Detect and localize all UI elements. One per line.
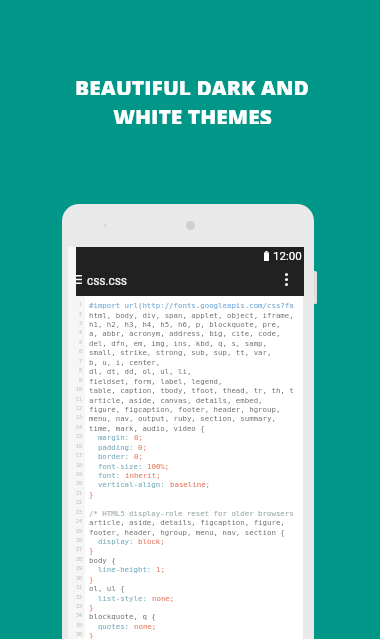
staticText: 12:00: [273, 249, 302, 262]
staticText: 34: [76, 612, 83, 618]
staticText: 26: [76, 537, 83, 543]
staticText: WHITE THEMES: [113, 103, 272, 124]
staticText: 21: [76, 490, 83, 496]
staticText: 20: [76, 480, 83, 486]
staticText: 25: [76, 528, 83, 534]
staticText: #import url(http://fonts.googleapis.com/…: [89, 301, 294, 310]
staticText: 9: [79, 377, 83, 383]
staticText: 1: [79, 301, 83, 307]
staticText: 19: [76, 471, 83, 477]
staticText: }: [89, 546, 94, 555]
staticText: fieldset, form, label, legend,: [89, 377, 223, 386]
staticText: border:: [89, 452, 134, 461]
staticText: CSS.CSS: [87, 276, 128, 287]
staticText: 0;: [134, 433, 143, 442]
staticText: 22: [76, 499, 83, 505]
staticText: dl, dt, dd, ol, ul, li,: [89, 367, 192, 376]
staticText: baseline;: [170, 480, 211, 489]
staticText: font-size:: [89, 462, 147, 471]
staticText: }: [89, 575, 94, 584]
staticText: 7: [79, 358, 83, 364]
staticText: article, aside, details, figcaption, fig…: [89, 518, 285, 527]
staticText: 0;: [138, 443, 147, 452]
staticText: 33: [76, 603, 83, 609]
staticText: 36: [76, 631, 83, 637]
staticText: 5: [79, 339, 83, 345]
staticText: footer, header, hgroup, menu, nav, secti…: [89, 528, 285, 537]
staticText: font:: [89, 471, 125, 480]
staticText: /* HTML5 display-role reset for older br…: [89, 509, 294, 518]
staticText: 31: [76, 584, 83, 590]
staticText: 30: [76, 575, 83, 581]
staticText: inherit;: [125, 471, 161, 480]
staticText: list-style:: [89, 594, 152, 603]
staticText: article, aside, canvas, details, embed,: [89, 396, 263, 405]
staticText: line-height:: [89, 565, 156, 574]
staticText: 18: [76, 462, 83, 468]
staticText: block;: [138, 537, 165, 546]
staticText: vertical-align:: [89, 480, 170, 489]
staticText: 10: [76, 386, 83, 392]
staticText: 6: [79, 348, 83, 354]
staticText: html, body, div, span, applet, object, i…: [89, 311, 294, 320]
staticText: b, u, i, center,: [89, 358, 161, 367]
staticText: small, strike, strong, sub, sup, tt, var…: [89, 348, 272, 357]
staticText: 32: [76, 594, 83, 600]
staticText: none;: [152, 594, 175, 603]
staticText: 3: [79, 320, 83, 326]
staticText: h1, h2, h3, h4, h5, h6, p, blockquote, p…: [89, 320, 281, 329]
staticText: figure, figcaption, footer, header, hgro…: [89, 405, 281, 414]
staticText: menu, nav, output, ruby, section, summar…: [89, 414, 276, 423]
staticText: }: [89, 631, 94, 639]
staticText: a, abbr, acronym, address, big, cite, co…: [89, 329, 281, 338]
staticText: 100%;: [147, 462, 170, 471]
staticText: body {: [89, 556, 116, 565]
staticText: time, mark, audio, video {: [89, 424, 205, 433]
staticText: padding:: [89, 443, 138, 452]
staticText: 11: [76, 396, 83, 402]
button[interactable]: More options: [278, 269, 294, 289]
staticText: none;: [134, 622, 157, 631]
staticText: 23: [76, 509, 83, 515]
staticText: 29: [76, 565, 83, 571]
staticText: 15: [76, 433, 83, 439]
staticText: margin:: [89, 433, 134, 442]
staticText: blockquote, q {: [89, 612, 156, 621]
staticText: 24: [76, 518, 83, 524]
staticText: 12: [76, 405, 83, 411]
staticText: BEAUTIFUL DARK AND: [75, 74, 309, 95]
staticText: 27: [76, 546, 83, 552]
button[interactable]: Open navigation drawer: [71, 272, 85, 286]
staticText: 16: [76, 443, 83, 449]
staticText: table, caption, tbody, tfoot, thead, tr,…: [89, 386, 294, 395]
staticText: 0;: [134, 452, 143, 461]
staticText: 4: [79, 329, 83, 335]
staticText: }: [89, 490, 94, 499]
staticText: display:: [89, 537, 138, 546]
staticText: }: [89, 603, 94, 612]
staticText: del, dfn, em, img, ins, kbd, q, s, samp,: [89, 339, 267, 348]
staticText: 13: [76, 414, 83, 420]
staticText: 8: [79, 367, 83, 373]
staticText: quotes:: [89, 622, 134, 631]
staticText: 1;: [156, 565, 165, 574]
staticText: 35: [76, 622, 83, 628]
staticText: ol, ul {: [89, 584, 125, 593]
staticText: 2: [79, 311, 83, 317]
staticText: 17: [76, 452, 83, 458]
staticText: 14: [76, 424, 83, 430]
staticText: 28: [76, 556, 83, 562]
